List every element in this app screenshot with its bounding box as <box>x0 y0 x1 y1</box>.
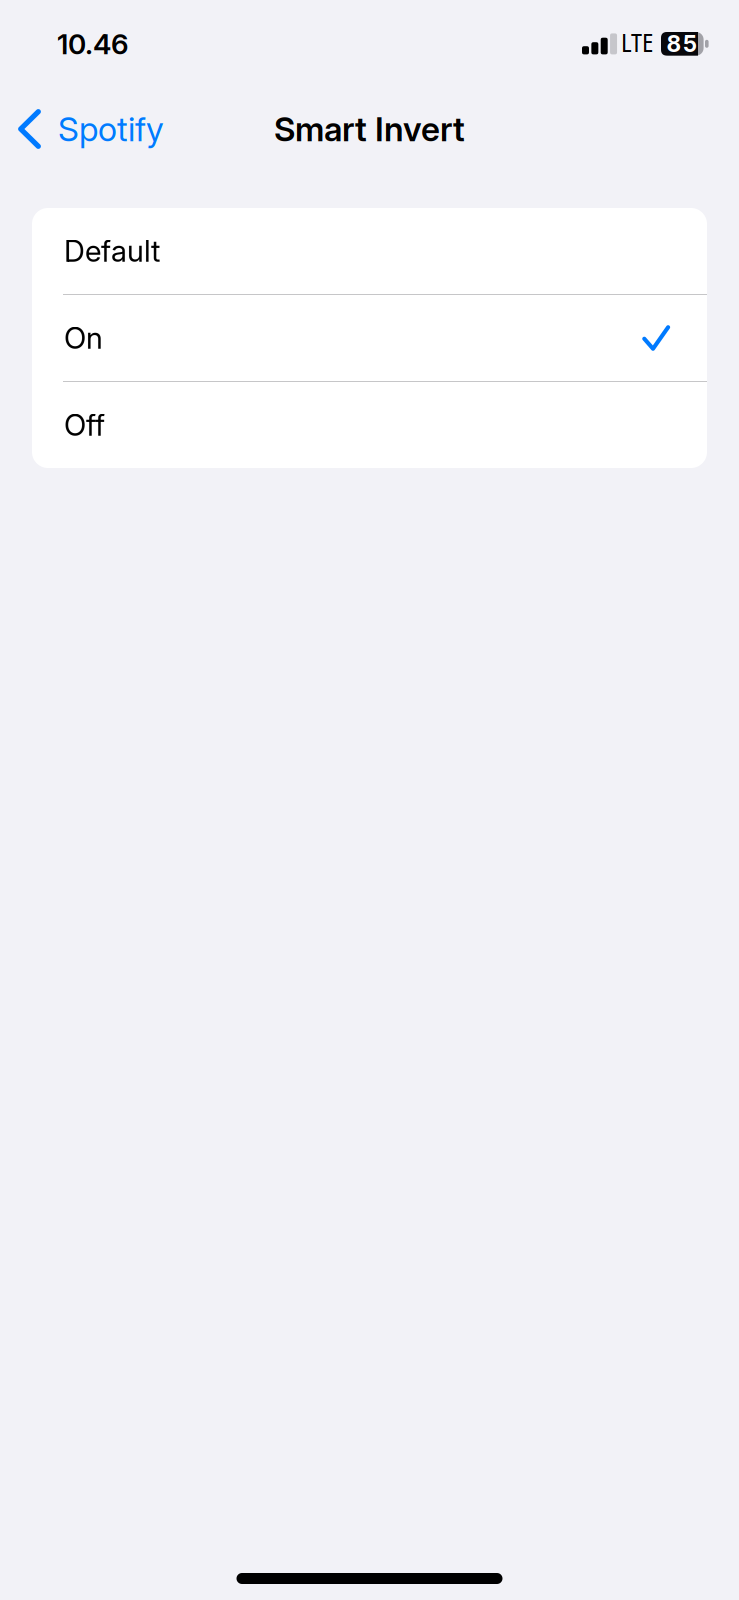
button[interactable]: Default <box>32 208 707 294</box>
staticText: Smart Invert <box>274 109 465 149</box>
button[interactable]: Off <box>32 382 707 468</box>
staticText: On <box>64 320 103 356</box>
button[interactable]: On <box>32 295 707 381</box>
staticText: LTE <box>621 25 653 59</box>
staticText: 10.46 <box>57 27 129 61</box>
button[interactable]: Back to Spotify <box>0 98 178 160</box>
staticText: 85 <box>666 30 697 57</box>
staticText: Default <box>64 233 160 269</box>
staticText: Off <box>64 407 105 443</box>
staticText: Spotify <box>58 109 164 149</box>
